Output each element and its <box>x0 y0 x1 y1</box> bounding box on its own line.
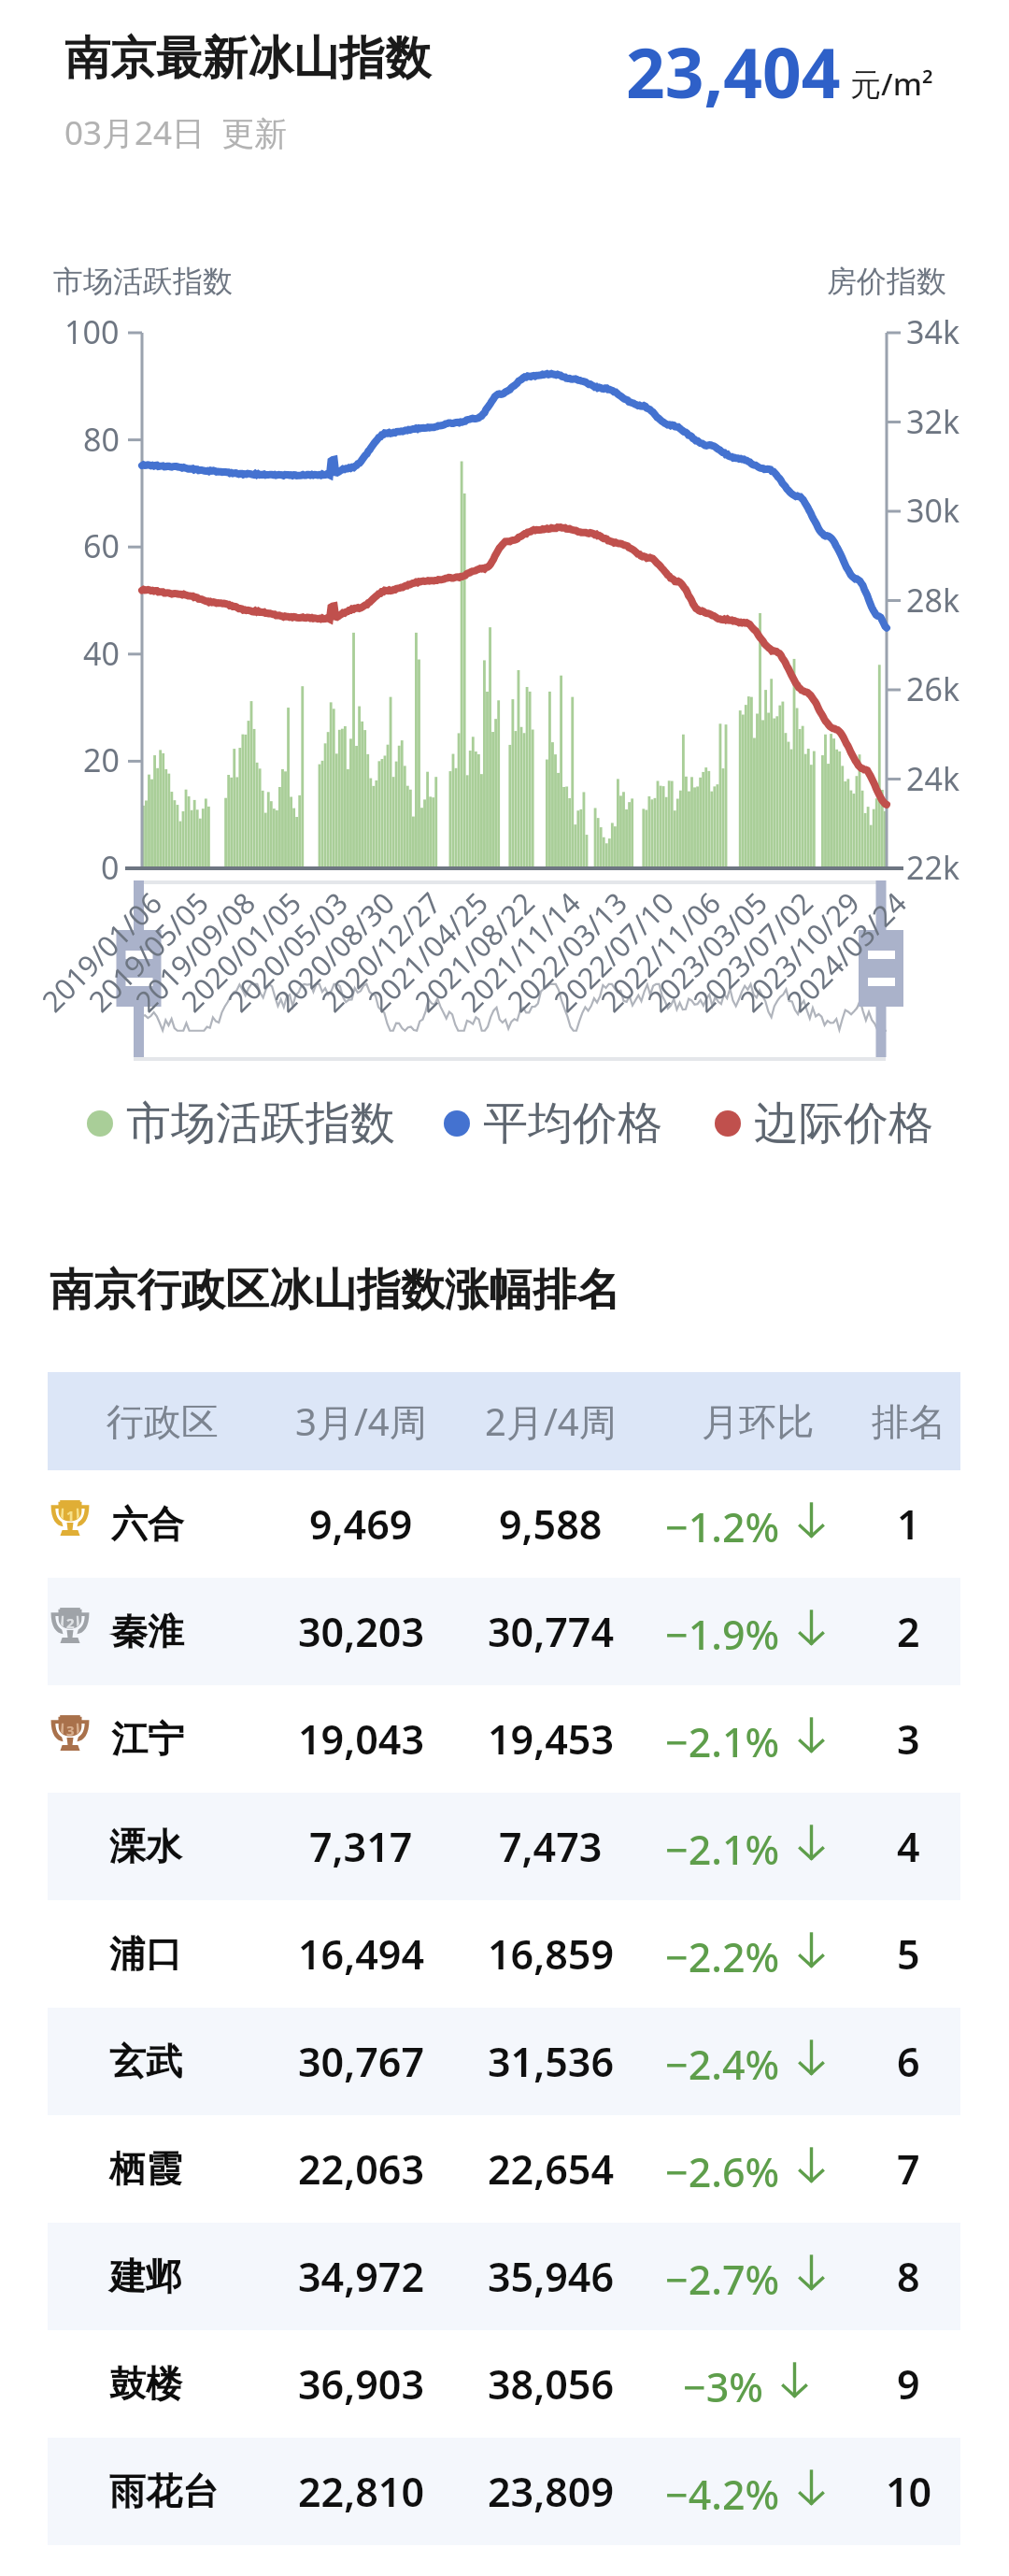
button[interactable]: 1 <box>48 1470 960 1578</box>
staticText: 30,203 <box>298 1604 424 1659</box>
staticText: 23,809 <box>488 2464 614 2519</box>
staticText: 32k <box>906 400 960 443</box>
staticText: 31,536 <box>488 2034 614 2089</box>
staticText: −2.1% <box>665 1822 780 1877</box>
staticText: 南京行政区冰山指数涨幅排名 <box>50 1263 620 1318</box>
staticText: 2023/03/05 <box>638 883 774 1019</box>
button[interactable]: 3 <box>48 1685 960 1793</box>
staticText: 溧水 <box>109 1824 182 1869</box>
staticText: −1.2% <box>665 1499 780 1554</box>
staticText: 1 <box>66 1506 75 1524</box>
staticText: 9,469 <box>309 1496 413 1552</box>
staticText: −2.2% <box>665 1929 780 1984</box>
staticText: 7 <box>897 2141 920 2197</box>
button[interactable]: 2 <box>48 1578 960 1685</box>
staticText: 22,654 <box>488 2141 614 2197</box>
staticText: 六合 <box>111 1501 184 1547</box>
staticText: 建邺 <box>109 2254 182 2299</box>
staticText: 0 <box>101 846 120 889</box>
staticText: 南京最新冰山指数 <box>64 30 431 88</box>
staticText: 行政区 <box>107 1398 219 1445</box>
staticText: 2023/10/29 <box>731 883 866 1019</box>
staticText: 9 <box>897 2356 920 2411</box>
staticText: 2023/07/02 <box>684 883 820 1019</box>
staticText: 2021/11/14 <box>452 883 587 1019</box>
staticText: 元/m² <box>850 63 933 105</box>
staticText: −2.1% <box>665 1714 780 1769</box>
staticText: 19,043 <box>298 1711 424 1767</box>
button[interactable]: 玄武 <box>48 2008 960 2115</box>
staticText: 3 <box>897 1711 920 1767</box>
staticText: 市场活跃指数 <box>53 263 233 300</box>
staticText: 8 <box>897 2249 920 2304</box>
staticText: 市场活跃指数 <box>126 1095 395 1152</box>
staticText: 2020/08/30 <box>266 883 401 1019</box>
staticText: 34,972 <box>298 2249 424 2304</box>
staticText: 7,317 <box>309 1819 413 1874</box>
staticText: 秦淮 <box>111 1609 184 1654</box>
staticText: 26k <box>906 667 960 710</box>
staticText: 36,903 <box>298 2356 424 2411</box>
staticText: 19,453 <box>488 1711 614 1767</box>
button[interactable]: 溧水 <box>48 1793 960 1900</box>
button[interactable]: Range end handle <box>859 930 903 1007</box>
staticText: 浦口 <box>109 1931 182 1977</box>
staticText: −3% <box>683 2359 763 2414</box>
button[interactable]: 栖霞 <box>48 2115 960 2223</box>
button[interactable]: 浦口 <box>48 1900 960 2008</box>
staticText: 2022/07/10 <box>545 883 680 1019</box>
staticText: 24k <box>906 757 960 800</box>
button[interactable]: 建邺 <box>48 2223 960 2330</box>
staticText: 60 <box>83 524 120 567</box>
staticText: −2.4% <box>665 2037 780 2092</box>
staticText: 江宁 <box>111 1716 184 1762</box>
staticText: 100 <box>64 310 120 353</box>
button[interactable]: 平均价格 <box>444 1095 662 1152</box>
staticText: 2 <box>66 1613 75 1632</box>
staticText: 10 <box>886 2464 932 2519</box>
staticText: 03月24日 更新 <box>64 110 288 155</box>
staticText: 16,494 <box>298 1926 424 1982</box>
staticText: 2021/04/25 <box>359 883 495 1019</box>
staticText: 平均价格 <box>483 1095 662 1152</box>
button[interactable]: Range start handle <box>117 930 162 1007</box>
staticText: 鼓楼 <box>109 2361 182 2407</box>
staticText: 2020/12/27 <box>312 883 448 1019</box>
staticText: 5 <box>897 1926 920 1982</box>
staticText: 排名 <box>872 1398 946 1445</box>
button[interactable]: 市场活跃指数 <box>87 1095 395 1152</box>
staticText: 28k <box>906 579 960 622</box>
staticText: 35,946 <box>488 2249 614 2304</box>
staticText: 40 <box>83 632 120 675</box>
staticText: 2月/4周 <box>485 1395 617 1447</box>
staticText: 2019/09/08 <box>126 883 262 1019</box>
staticText: 30,767 <box>298 2034 424 2089</box>
staticText: 月环比 <box>702 1398 814 1445</box>
staticText: 2022/11/06 <box>592 883 727 1019</box>
button[interactable]: 边际价格 <box>715 1095 933 1152</box>
staticText: 3月/4周 <box>295 1395 427 1447</box>
staticText: 4 <box>897 1819 920 1874</box>
staticText: 38,056 <box>488 2356 614 2411</box>
staticText: 34k <box>906 310 960 353</box>
button[interactable]: 鼓楼 <box>48 2330 960 2438</box>
staticText: −2.6% <box>665 2144 780 2199</box>
staticText: −4.2% <box>665 2467 780 2522</box>
staticText: 边际价格 <box>754 1095 933 1152</box>
staticText: −2.7% <box>665 2252 780 2307</box>
staticText: 6 <box>897 2034 920 2089</box>
staticText: 雨花台 <box>109 2469 219 2514</box>
staticText: 2024/03/24 <box>778 883 913 1019</box>
staticText: 1 <box>897 1496 920 1552</box>
staticText: 2020/01/05 <box>172 883 308 1019</box>
staticText: 23,404 <box>626 25 841 118</box>
staticText: 2022/03/13 <box>498 883 634 1019</box>
staticText: 2021/08/22 <box>406 883 541 1019</box>
staticText: 20 <box>83 738 120 781</box>
staticText: 16,859 <box>488 1926 614 1982</box>
staticText: 9,588 <box>499 1496 603 1552</box>
staticText: 栖霞 <box>109 2146 182 2192</box>
staticText: 80 <box>83 418 120 461</box>
staticText: 30k <box>906 489 960 532</box>
button[interactable]: 雨花台 <box>48 2438 960 2545</box>
